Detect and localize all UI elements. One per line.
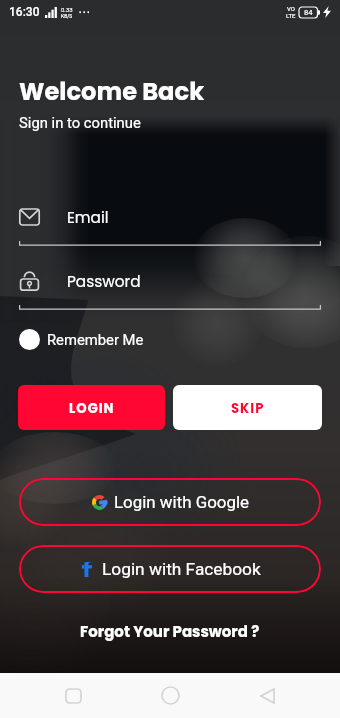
staticText: KB/S [61, 13, 73, 19]
staticText: Welcome Back [19, 75, 205, 109]
staticText: Sign in to continue [19, 114, 141, 131]
button[interactable]: Forgot Your Password ? [80, 621, 260, 642]
staticText: ⋯ [78, 5, 90, 19]
staticText: 0.33 [61, 6, 73, 13]
staticText: 84 [304, 8, 313, 17]
button[interactable]: Back [243, 673, 291, 718]
staticText: SKIP [231, 399, 265, 417]
staticText: 16:30 [9, 5, 40, 19]
staticText: VO [287, 5, 295, 12]
button[interactable]: SKIP [173, 385, 322, 430]
staticText: LOGIN [69, 399, 115, 417]
staticText: Login with Facebook [102, 559, 261, 579]
button[interactable]: Login with Google [19, 478, 321, 526]
button[interactable]: Home [146, 673, 194, 718]
staticText: Email [67, 207, 109, 228]
staticText: Password [67, 271, 141, 292]
button[interactable]: Login with Facebook [19, 545, 321, 593]
button[interactable]: Recents [49, 673, 97, 718]
staticText: Login with Google [114, 492, 249, 512]
button[interactable]: LOGIN [18, 385, 165, 430]
staticText: LTE [286, 12, 296, 19]
staticText: Remember Me [47, 331, 144, 348]
button[interactable]: Remember Me [19, 329, 144, 350]
